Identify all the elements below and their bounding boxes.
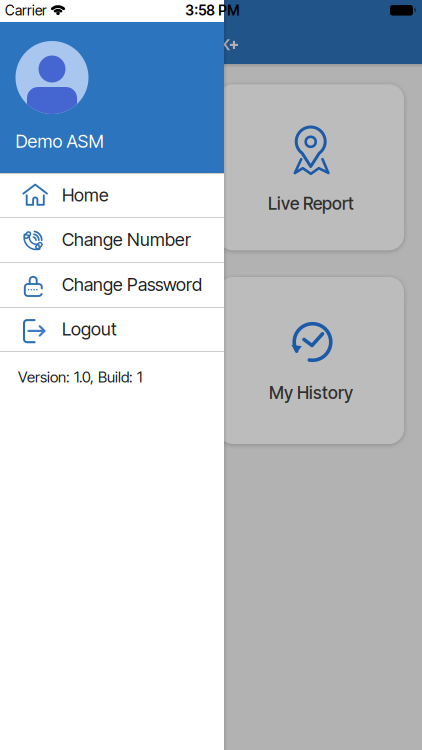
staticText: Version: 1.0, Build: 1	[18, 368, 142, 386]
staticText: Live Report	[268, 193, 354, 214]
button[interactable]: Logout	[0, 307, 224, 350]
staticText: 3:58 PM	[185, 2, 239, 19]
button[interactable]: Home	[0, 173, 224, 216]
staticText: Demo ASM	[15, 130, 103, 152]
staticText: TRACK	[182, 36, 229, 54]
staticText: Change Password	[62, 274, 202, 295]
button[interactable]: Change Password	[0, 263, 224, 306]
button[interactable]: Change Number	[0, 218, 224, 261]
staticText: My History	[269, 382, 353, 403]
staticText: Change Number	[62, 229, 191, 250]
button[interactable]: Live Report	[218, 84, 404, 250]
button[interactable]: My History	[218, 277, 404, 444]
staticText: Home	[62, 184, 109, 206]
staticText: Carrier	[5, 2, 47, 19]
staticText: Logout	[62, 318, 117, 340]
